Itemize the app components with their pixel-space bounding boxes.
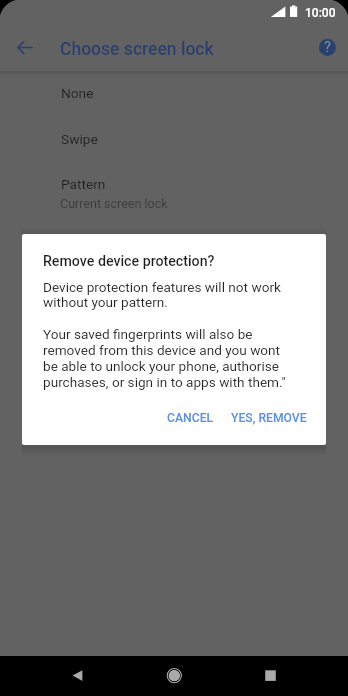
staticText: Swipe — [61, 131, 98, 147]
staticText: Pattern — [61, 176, 106, 192]
staticText: None — [61, 85, 94, 101]
staticText: Current screen lock — [60, 196, 168, 211]
button[interactable]: CANCEL — [159, 405, 222, 431]
staticText: YES, REMOVE — [231, 411, 307, 425]
staticText: Remove device protection? — [43, 253, 215, 270]
button[interactable]: Help — [311, 31, 343, 63]
button[interactable]: Back — [58, 656, 96, 696]
button[interactable]: Back — [8, 31, 40, 63]
staticText: CANCEL — [167, 411, 214, 425]
button[interactable]: None — [0, 78, 348, 123]
button[interactable]: Pattern — [0, 169, 348, 214]
button[interactable]: Swipe — [0, 124, 348, 169]
button[interactable]: Recent apps — [252, 656, 290, 696]
staticText: 10:00 — [305, 6, 336, 20]
button[interactable]: Home — [155, 656, 193, 696]
button[interactable]: YES, REMOVE — [223, 405, 315, 431]
staticText: Choose screen lock — [60, 39, 214, 60]
staticText: Device protection features will not work… — [43, 279, 286, 391]
staticText: ? — [324, 39, 331, 56]
